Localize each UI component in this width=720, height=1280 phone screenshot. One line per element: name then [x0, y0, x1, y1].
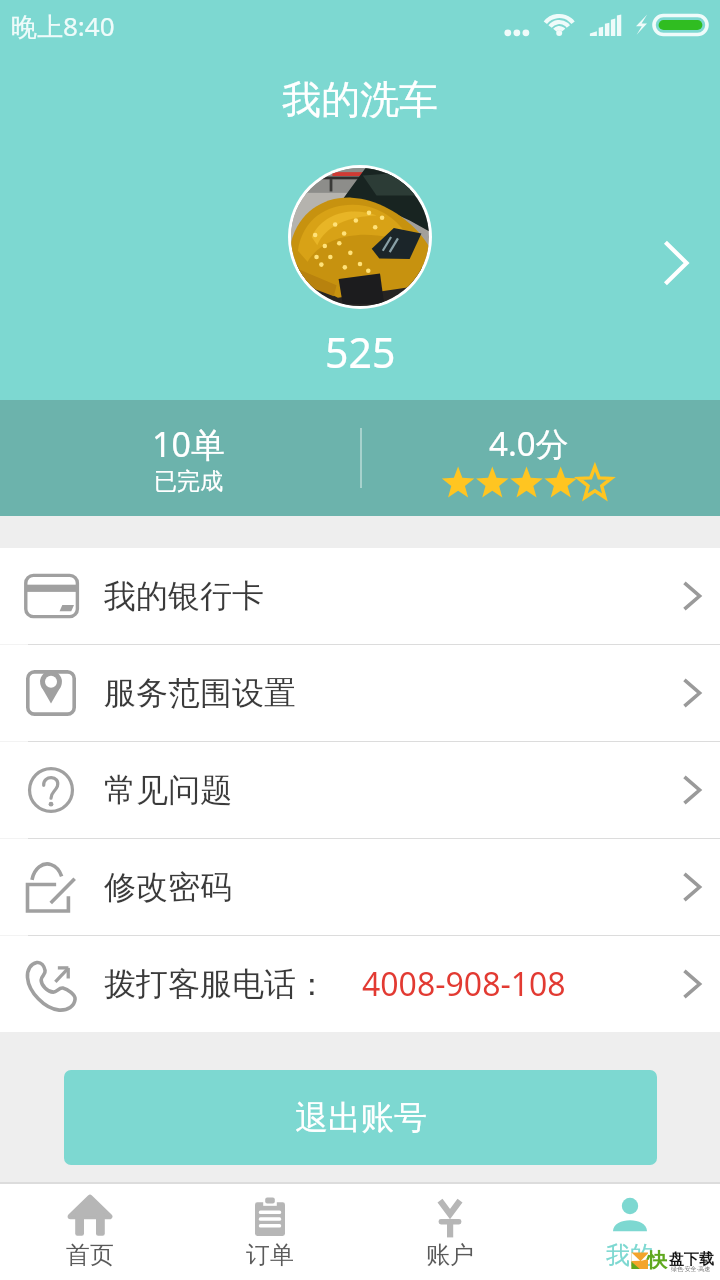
button[interactable]: 订单 — [180, 1184, 360, 1280]
staticText: 已完成 — [154, 467, 223, 496]
staticText: 晚上8:40 — [11, 8, 115, 44]
staticText: 绿色·安全·高速 — [671, 1265, 711, 1273]
staticText: 订单 — [246, 1240, 294, 1270]
button[interactable]: 10单 — [108, 400, 268, 516]
button[interactable]: Profile details — [644, 221, 708, 305]
staticText: 退出账号 — [295, 1097, 427, 1139]
staticText: 4.0分 — [489, 421, 569, 466]
button[interactable]: 我的 — [540, 1184, 720, 1280]
staticText: 修改密码 — [104, 867, 232, 907]
button[interactable]: 账户 — [360, 1184, 540, 1280]
staticText: 快 — [647, 1248, 667, 1273]
staticText: 账户 — [426, 1240, 474, 1270]
button[interactable]: 4.0分 — [409, 400, 649, 516]
staticText: 常见问题 — [104, 770, 232, 810]
button[interactable] — [291, 168, 429, 306]
button[interactable]: 服务范围设置 — [0, 645, 720, 741]
staticText: 盘下载 — [669, 1250, 714, 1269]
button[interactable]: 退出账号 — [64, 1070, 657, 1165]
staticText: 我的洗车 — [282, 75, 438, 124]
button[interactable]: 拨打客服电话： — [0, 936, 720, 1032]
staticText: 4008-908-108 — [362, 962, 566, 1006]
staticText: 首页 — [66, 1240, 114, 1270]
staticText: 525 — [325, 324, 396, 380]
button[interactable]: 常见问题 — [0, 742, 720, 838]
button[interactable]: 首页 — [0, 1184, 180, 1280]
staticText: 10单 — [152, 421, 225, 467]
button[interactable]: 我的银行卡 — [0, 548, 720, 644]
staticText: 我的 — [606, 1240, 654, 1270]
staticText: 我的银行卡 — [104, 576, 264, 616]
button[interactable]: 修改密码 — [0, 839, 720, 935]
staticText: 拨打客服电话： — [104, 964, 328, 1004]
staticText: 服务范围设置 — [104, 673, 296, 713]
